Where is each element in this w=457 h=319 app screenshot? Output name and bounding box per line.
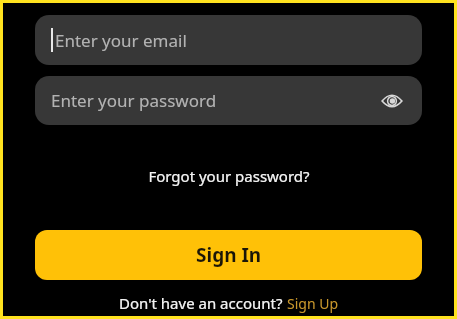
- button[interactable]: Enter your password: [35, 76, 422, 125]
- staticText: Sign Up: [287, 294, 339, 313]
- staticText: Enter your email: [55, 29, 187, 52]
- button[interactable]: Show password: [378, 87, 406, 115]
- staticText: Enter your password: [51, 89, 217, 112]
- button[interactable]: Forgot your password?: [142, 163, 316, 189]
- staticText: Sign In: [196, 242, 262, 268]
- staticText: Forgot your password?: [148, 166, 310, 186]
- button[interactable]: Sign In: [35, 230, 422, 280]
- staticText: Don't have an account?: [119, 293, 287, 313]
- button[interactable]: Enter your email: [35, 15, 422, 65]
- button[interactable]: Sign Up: [287, 294, 339, 313]
